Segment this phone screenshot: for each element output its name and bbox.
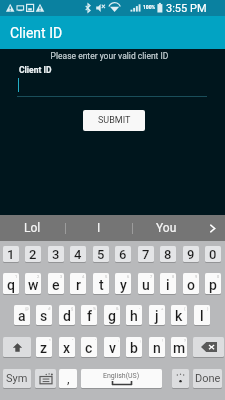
staticText: e <box>52 277 60 293</box>
staticText: f <box>87 308 92 324</box>
staticText: Sym <box>6 372 28 385</box>
staticText: , <box>67 371 70 386</box>
staticText: q <box>7 277 15 293</box>
button[interactable]: n <box>149 337 165 357</box>
staticText: " <box>72 338 74 343</box>
staticText: % <box>93 306 96 311</box>
staticText: & <box>116 306 119 311</box>
button[interactable]: 7 <box>138 246 154 262</box>
button[interactable]: , <box>59 369 77 388</box>
staticText: ' <box>95 338 96 343</box>
staticText: Client ID <box>10 25 63 41</box>
staticText: m <box>173 340 186 356</box>
staticText: v <box>109 340 116 356</box>
button[interactable]: u <box>138 273 154 294</box>
button[interactable]: You <box>133 215 199 241</box>
staticText: z <box>40 340 48 356</box>
staticText: Lol <box>24 221 41 235</box>
staticText: t <box>99 277 104 293</box>
staticText: g <box>108 308 116 324</box>
button[interactable]: Sym <box>3 369 31 388</box>
button[interactable]: l <box>194 305 210 325</box>
button[interactable]: 9 <box>183 246 199 262</box>
button[interactable]: m <box>171 337 187 357</box>
button[interactable]: x <box>59 337 75 357</box>
button[interactable]: Backspace <box>193 337 224 357</box>
button[interactable]: c <box>81 337 97 357</box>
staticText: 100% <box>143 4 156 10</box>
button[interactable]: Client ID <box>0 16 225 49</box>
button[interactable]: h <box>126 305 142 325</box>
staticText: 3 <box>60 274 63 279</box>
staticText: 8 <box>164 247 172 262</box>
button[interactable]: v <box>104 337 120 357</box>
button[interactable]: j <box>149 305 165 325</box>
button[interactable]: 1 <box>3 246 19 262</box>
button[interactable]: Space <box>81 369 162 388</box>
button[interactable]: 5 <box>93 246 109 262</box>
staticText: 6 <box>127 274 130 279</box>
staticText: 3:55 PM <box>166 2 207 15</box>
button[interactable]: 8 <box>160 246 176 262</box>
staticText: ) <box>207 306 209 311</box>
button[interactable]: 2 <box>25 246 41 262</box>
button[interactable]: Switch keyboard <box>35 369 56 388</box>
staticText: + <box>161 306 164 311</box>
button[interactable]: r <box>70 273 86 294</box>
staticText: Please enter your valid client ID <box>0 51 222 61</box>
staticText: You <box>156 221 177 235</box>
staticText: s <box>40 308 48 324</box>
button[interactable]: Done <box>193 369 222 388</box>
staticText: English(US) <box>103 372 140 380</box>
staticText: Client ID <box>19 65 52 75</box>
button[interactable]: a <box>14 305 30 325</box>
button[interactable]: i <box>160 273 176 294</box>
button[interactable]: Symbols <box>172 369 189 388</box>
button[interactable]: 6 <box>115 246 131 262</box>
staticText: r <box>76 277 81 293</box>
button[interactable]: g <box>104 305 120 325</box>
button[interactable]: b <box>126 337 142 357</box>
staticText: 9 <box>195 274 198 279</box>
staticText: x <box>63 340 71 356</box>
staticText: # <box>48 306 51 311</box>
staticText: ! <box>162 338 164 343</box>
button[interactable]: 0 <box>205 246 221 262</box>
staticText: i <box>166 277 170 293</box>
staticText: w <box>28 277 39 293</box>
staticText: 7 <box>150 274 153 279</box>
button[interactable]: o <box>183 273 199 294</box>
staticText: u <box>142 277 150 293</box>
button[interactable]: More suggestions <box>199 215 225 241</box>
button[interactable]: SUBMIT <box>83 110 145 131</box>
button[interactable]: f <box>81 305 97 325</box>
staticText: a <box>18 308 26 324</box>
staticText: o <box>187 277 195 293</box>
button[interactable]: Shift <box>3 337 31 357</box>
button[interactable]: s <box>36 305 52 325</box>
button[interactable]: 4 <box>70 246 86 262</box>
button[interactable]: Lol <box>0 215 65 241</box>
button[interactable]: k <box>171 305 187 325</box>
button[interactable]: p <box>205 273 221 294</box>
button[interactable]: I <box>66 215 132 241</box>
staticText: 8 <box>172 274 175 279</box>
staticText: 7 <box>142 247 150 262</box>
staticText: Done <box>195 372 221 385</box>
button[interactable]: e <box>48 273 64 294</box>
button[interactable]: y <box>115 273 131 294</box>
button[interactable]: t <box>93 273 109 294</box>
staticText: 5 <box>105 274 108 279</box>
button[interactable]: z <box>36 337 52 357</box>
staticText: ( <box>184 306 186 311</box>
staticText: y <box>120 277 127 293</box>
button[interactable]: 3 <box>48 246 64 262</box>
staticText: - <box>139 306 141 311</box>
button[interactable]: q <box>3 273 19 294</box>
staticText: 1 <box>15 274 18 279</box>
button[interactable]: w <box>25 273 41 294</box>
staticText: 0 <box>217 274 220 279</box>
staticText: k <box>175 308 183 324</box>
staticText: b <box>130 340 138 356</box>
button[interactable]: d <box>59 305 75 325</box>
